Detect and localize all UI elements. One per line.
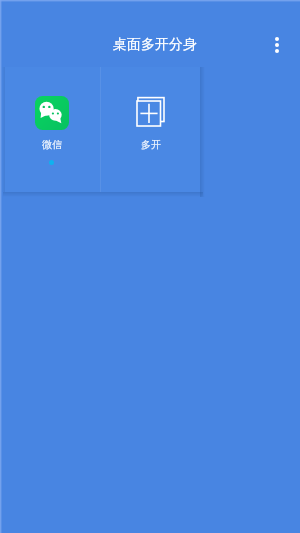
staticText: 微信 xyxy=(42,138,62,151)
button[interactable]: 微信 xyxy=(5,67,100,192)
staticText: 多开 xyxy=(141,138,161,151)
staticText: 桌面多开分身 xyxy=(113,36,197,54)
button[interactable]: More options xyxy=(261,29,293,61)
button[interactable]: 多开 xyxy=(101,67,200,192)
